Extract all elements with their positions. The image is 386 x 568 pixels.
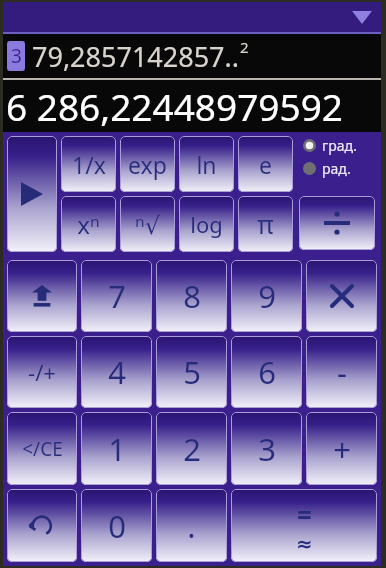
staticText: 79,2857142857.. xyxy=(32,38,240,75)
button[interactable]: 1/x xyxy=(61,136,116,192)
button[interactable]: xⁿ xyxy=(61,196,116,252)
button[interactable]: ⁿ√ xyxy=(120,196,175,252)
staticText: 3 xyxy=(11,43,22,69)
button[interactable]: </CE xyxy=(7,412,77,485)
button[interactable]: 0 xyxy=(81,489,152,562)
staticText: ln xyxy=(196,149,217,180)
button[interactable]: More functions xyxy=(7,136,57,252)
staticText: 2 xyxy=(240,37,249,57)
staticText: 5 xyxy=(183,351,201,393)
button[interactable]: рад. xyxy=(303,159,351,178)
button[interactable]: 1 xyxy=(81,412,152,485)
staticText: + xyxy=(333,428,351,470)
staticText: 0 xyxy=(108,505,126,547)
button[interactable]: Divide xyxy=(299,196,375,250)
staticText: - xyxy=(337,351,347,393)
staticText: 8 xyxy=(183,275,201,317)
button[interactable]: -/+ xyxy=(7,336,77,408)
button[interactable]: Undo xyxy=(7,489,77,562)
staticText: ≈ xyxy=(296,532,313,555)
button[interactable]: exp xyxy=(120,136,175,192)
staticText: град. xyxy=(322,136,357,155)
button[interactable]: град. xyxy=(303,136,357,155)
button[interactable]: 8 xyxy=(156,260,227,332)
button[interactable]: 5 xyxy=(156,336,227,408)
staticText: exp xyxy=(128,149,167,180)
button[interactable]: 2 xyxy=(156,412,227,485)
button[interactable]: 9 xyxy=(231,260,302,332)
button[interactable]: Memory xyxy=(7,260,77,332)
button[interactable]: 7 xyxy=(81,260,152,332)
staticText: log xyxy=(190,209,223,239)
staticText: -/+ xyxy=(28,357,56,387)
staticText: ⁿ√ xyxy=(135,208,160,241)
staticText: . xyxy=(187,505,196,547)
button[interactable]: log xyxy=(179,196,234,252)
staticText: 2 xyxy=(183,428,201,470)
staticText: 4 xyxy=(108,351,126,393)
button[interactable]: Equals xyxy=(231,489,377,562)
staticText: 1/x xyxy=(72,149,106,180)
button[interactable]: Menu xyxy=(351,6,373,28)
button[interactable]: + xyxy=(306,412,377,485)
staticText: </CE xyxy=(22,436,63,462)
staticText: 7 xyxy=(108,275,126,317)
staticText: 3 xyxy=(258,428,276,470)
staticText: xⁿ xyxy=(77,208,100,241)
button[interactable]: ln xyxy=(179,136,234,192)
staticText: 6 286,22448979592 xyxy=(6,81,343,131)
staticText: 1 xyxy=(108,428,126,470)
button[interactable]: 4 xyxy=(81,336,152,408)
button[interactable]: 6 xyxy=(231,336,302,408)
button[interactable]: . xyxy=(156,489,227,562)
staticText: π xyxy=(257,207,274,241)
button[interactable]: e xyxy=(238,136,293,192)
staticText: 9 xyxy=(258,275,276,317)
button[interactable]: π xyxy=(238,196,293,252)
staticText: e xyxy=(259,149,272,180)
staticText: 6 xyxy=(258,351,276,393)
staticText: = xyxy=(297,497,312,532)
button[interactable]: Multiply xyxy=(306,260,377,332)
button[interactable]: 3 xyxy=(231,412,302,485)
button[interactable]: - xyxy=(306,336,377,408)
staticText: рад. xyxy=(322,159,351,178)
